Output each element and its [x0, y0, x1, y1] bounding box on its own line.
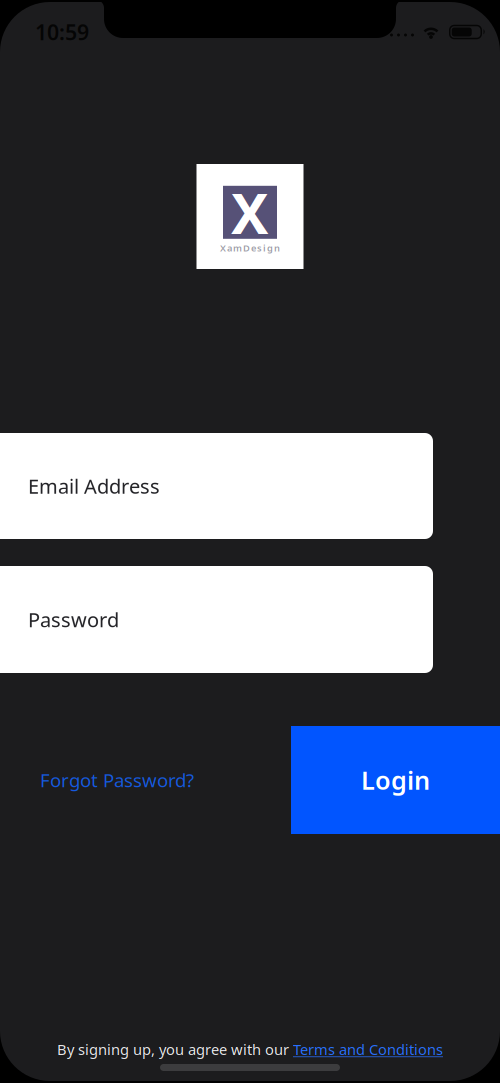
staticText: Email Address: [28, 473, 160, 499]
button[interactable]: Login: [291, 726, 500, 834]
staticText: By signing up, you agree with our: [57, 1039, 293, 1059]
staticText: Login: [361, 763, 430, 797]
staticText: Password: [28, 606, 119, 633]
staticText: 10:59: [35, 18, 89, 46]
button[interactable]: Password: [0, 566, 433, 673]
button[interactable]: Terms and Conditions: [293, 1039, 443, 1059]
staticText: Forgot Password?: [40, 768, 194, 792]
staticText: Terms and Conditions: [293, 1039, 443, 1059]
staticText: X: [231, 175, 269, 249]
button[interactable]: Email Address: [0, 433, 433, 539]
button[interactable]: Forgot Password?: [40, 768, 194, 792]
staticText: X a m D e s i g n: [220, 242, 280, 254]
